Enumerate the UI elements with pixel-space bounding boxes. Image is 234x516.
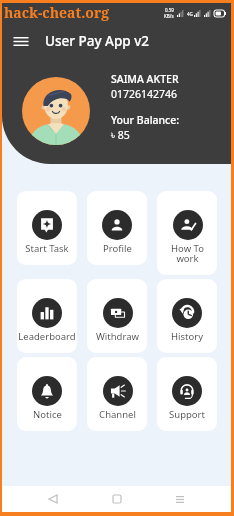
button[interactable]: Open navigation menu xyxy=(5,25,37,57)
staticText: History xyxy=(171,330,203,343)
button[interactable]: Home xyxy=(104,486,130,512)
button[interactable]: Start Task xyxy=(17,191,77,265)
button[interactable]: Channel xyxy=(87,357,147,431)
button[interactable]: History xyxy=(157,279,217,353)
staticText: ৳ 85 xyxy=(111,128,130,142)
button[interactable]: How To work xyxy=(157,191,217,275)
staticText: How To work xyxy=(171,242,204,265)
staticText: KB/s xyxy=(164,13,174,19)
staticText: SAIMA AKTER xyxy=(111,72,179,86)
staticText: 4G xyxy=(187,11,193,17)
button[interactable]: Withdraw xyxy=(87,279,147,353)
button[interactable]: Support xyxy=(157,357,217,431)
staticText: 0.59 xyxy=(165,7,174,13)
button[interactable]: Profile xyxy=(87,191,147,265)
button[interactable]: Notice xyxy=(17,357,77,431)
staticText: hack-cheat.org xyxy=(4,3,110,22)
staticText: Withdraw xyxy=(96,330,139,343)
staticText: 01726142746 xyxy=(111,87,178,101)
staticText: Your Balance: xyxy=(111,113,180,127)
button[interactable]: Recent apps xyxy=(167,486,193,512)
staticText: User Pay App v2 xyxy=(45,32,150,50)
staticText: Leaderboard xyxy=(18,330,76,343)
staticText: Notice xyxy=(33,408,62,421)
staticText: Support xyxy=(169,408,205,421)
staticText: Profile xyxy=(103,242,132,255)
button[interactable]: Back xyxy=(40,486,66,512)
staticText: Start Task xyxy=(25,242,69,255)
button[interactable]: Leaderboard xyxy=(17,279,77,353)
staticText: Channel xyxy=(99,408,136,421)
